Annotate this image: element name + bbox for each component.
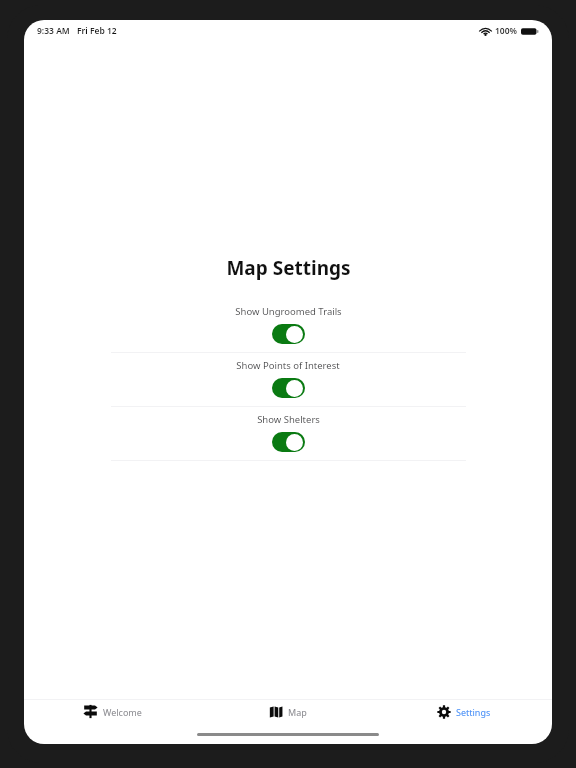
staticText: Show Shelters [257, 413, 320, 426]
button[interactable]: Toggle on [272, 432, 305, 452]
staticText: 9:33 AM [37, 25, 70, 37]
button[interactable]: Settings [376, 701, 552, 723]
button[interactable]: Show Shelters [24, 407, 552, 460]
staticText: Map [288, 706, 307, 718]
button[interactable]: Welcome [24, 700, 200, 723]
button[interactable]: Map [200, 701, 376, 723]
staticText: Show Points of Interest [236, 359, 340, 372]
staticText: Settings [456, 706, 491, 718]
staticText: 100% [495, 25, 518, 37]
button[interactable]: Show Points of Interest [24, 353, 552, 406]
staticText: Fri Feb 12 [77, 25, 117, 37]
staticText: Show Ungroomed Trails [235, 305, 342, 318]
button[interactable]: Toggle on [272, 378, 305, 398]
button[interactable]: Toggle on [272, 324, 305, 344]
button[interactable]: Show Ungroomed Trails [24, 299, 552, 352]
staticText: Map Settings [226, 255, 351, 281]
staticText: Welcome [103, 706, 142, 718]
